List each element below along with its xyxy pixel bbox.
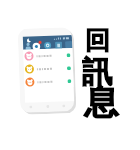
button[interactable]: Navigation (62, 104, 65, 107)
button[interactable]: Avatar (23, 48, 73, 63)
button[interactable]: Files (55, 41, 62, 50)
button[interactable]: Avatar (24, 74, 74, 89)
button[interactable]: Profile (25, 42, 31, 50)
staticText: 息 (84, 81, 118, 124)
other: Avatar (25, 64, 34, 74)
button[interactable]: Navigation (46, 105, 49, 108)
button[interactable]: Recent (44, 42, 51, 49)
other: Avatar (25, 77, 35, 87)
button[interactable]: Avatar (24, 61, 73, 76)
staticText: 訊 (82, 53, 112, 91)
other: Avatar (24, 51, 34, 61)
staticText: 回 (85, 25, 110, 56)
button[interactable]: Messages (32, 40, 42, 50)
button[interactable]: More (65, 41, 72, 48)
button[interactable]: Navigation (29, 105, 32, 109)
